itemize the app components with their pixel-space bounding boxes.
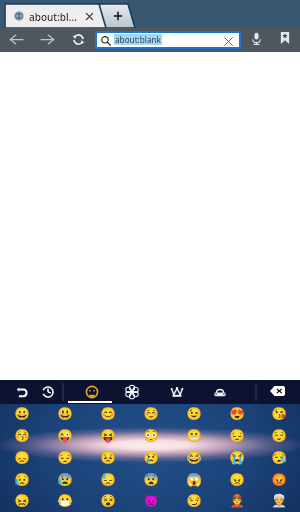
button[interactable]: 😱 <box>172 468 215 490</box>
staticText: 👿 <box>143 493 159 508</box>
staticText: 😞 <box>14 450 30 465</box>
button[interactable]: 😏 <box>172 490 215 510</box>
button[interactable]: Undo <box>15 385 29 399</box>
button[interactable]: Backspace <box>270 386 285 396</box>
button[interactable]: Close tab <box>83 10 96 23</box>
staticText: 😳 <box>143 428 159 443</box>
button[interactable]: 😜 <box>43 424 86 446</box>
button[interactable]: 😊 <box>86 402 129 424</box>
button[interactable]: 😀 <box>0 402 43 424</box>
staticText: 😠 <box>229 472 245 487</box>
button[interactable]: Travel <box>213 385 227 399</box>
staticText: 😡 <box>271 472 287 487</box>
button[interactable]: 😔 <box>43 446 86 468</box>
button[interactable]: 👿 <box>129 490 172 510</box>
staticText: 😘 <box>271 406 287 421</box>
staticText: 😝 <box>100 428 116 443</box>
button[interactable]: Recent <box>41 385 55 399</box>
button[interactable]: Clear <box>222 35 235 48</box>
staticText: 👲 <box>229 493 245 508</box>
button[interactable]: 😚 <box>0 424 43 446</box>
button[interactable]: 😪 <box>258 446 300 468</box>
button[interactable]: 😨 <box>129 468 172 490</box>
staticText: 😣 <box>100 450 116 465</box>
button[interactable]: 😬 <box>172 424 215 446</box>
staticText: 😔 <box>229 428 245 443</box>
button[interactable]: Bookmarks <box>277 30 293 46</box>
staticText: 😢 <box>143 450 159 465</box>
button[interactable]: 😭 <box>215 446 258 468</box>
button[interactable]: 😢 <box>129 446 172 468</box>
button[interactable]: 😣 <box>86 446 129 468</box>
staticText: 😌 <box>271 428 287 443</box>
button[interactable]: 😔 <box>215 424 258 446</box>
button[interactable]: 😌 <box>258 424 300 446</box>
staticText: 😀 <box>14 406 30 421</box>
staticText: 😷 <box>57 493 73 508</box>
button[interactable]: Objects <box>170 385 184 399</box>
staticText: 😭 <box>229 450 245 465</box>
button[interactable]: New tab <box>99 4 135 28</box>
staticText: 😊 <box>100 406 116 421</box>
staticText: 😥 <box>14 472 30 487</box>
button[interactable]: Smileys <box>85 385 99 399</box>
staticText: 👳 <box>271 493 287 508</box>
staticText: 😵 <box>100 493 116 508</box>
button[interactable]: about:bl… <box>5 4 108 28</box>
staticText: 😰 <box>57 472 73 487</box>
button[interactable]: 😂 <box>172 446 215 468</box>
button[interactable]: 😥 <box>0 468 43 490</box>
button[interactable]: about:blank <box>97 33 239 47</box>
staticText: 😓 <box>100 472 116 487</box>
button[interactable]: 😷 <box>43 490 86 510</box>
staticText: about:blank <box>115 34 161 45</box>
button[interactable]: Voice search <box>248 30 265 47</box>
button[interactable]: Forward <box>39 31 56 48</box>
button[interactable]: 😠 <box>215 468 258 490</box>
button[interactable]: Nature <box>125 385 139 399</box>
staticText: 😪 <box>271 450 287 465</box>
button[interactable]: 😓 <box>86 468 129 490</box>
button[interactable]: 😘 <box>258 402 300 424</box>
button[interactable]: 😵 <box>86 490 129 510</box>
button[interactable]: 😞 <box>0 446 43 468</box>
staticText: about:bl… <box>29 10 77 24</box>
staticText: 😃 <box>57 406 73 421</box>
staticText: 😉 <box>186 406 202 421</box>
button[interactable]: Back <box>8 31 25 48</box>
button[interactable]: 😝 <box>86 424 129 446</box>
staticText: 😍 <box>229 406 245 421</box>
staticText: 😂 <box>186 450 202 465</box>
staticText: 😨 <box>143 472 159 487</box>
button[interactable]: ☺️ <box>129 402 172 424</box>
button[interactable]: 😉 <box>172 402 215 424</box>
staticText: 😱 <box>186 472 202 487</box>
button[interactable]: Reload <box>70 31 87 48</box>
button[interactable]: 😃 <box>43 402 86 424</box>
staticText: 😖 <box>14 493 30 508</box>
staticText: 😬 <box>186 428 202 443</box>
staticText: 😔 <box>57 450 73 465</box>
button[interactable]: 👲 <box>215 490 258 510</box>
button[interactable]: 😡 <box>258 468 300 490</box>
staticText: 😚 <box>14 428 30 443</box>
button[interactable]: 👳 <box>258 490 300 510</box>
staticText: 😏 <box>186 493 202 508</box>
button[interactable]: 😍 <box>215 402 258 424</box>
staticText: 😜 <box>57 428 73 443</box>
button[interactable]: 😖 <box>0 490 43 510</box>
button[interactable]: 😳 <box>129 424 172 446</box>
button[interactable]: 😰 <box>43 468 86 490</box>
staticText: ☺️ <box>143 406 159 421</box>
